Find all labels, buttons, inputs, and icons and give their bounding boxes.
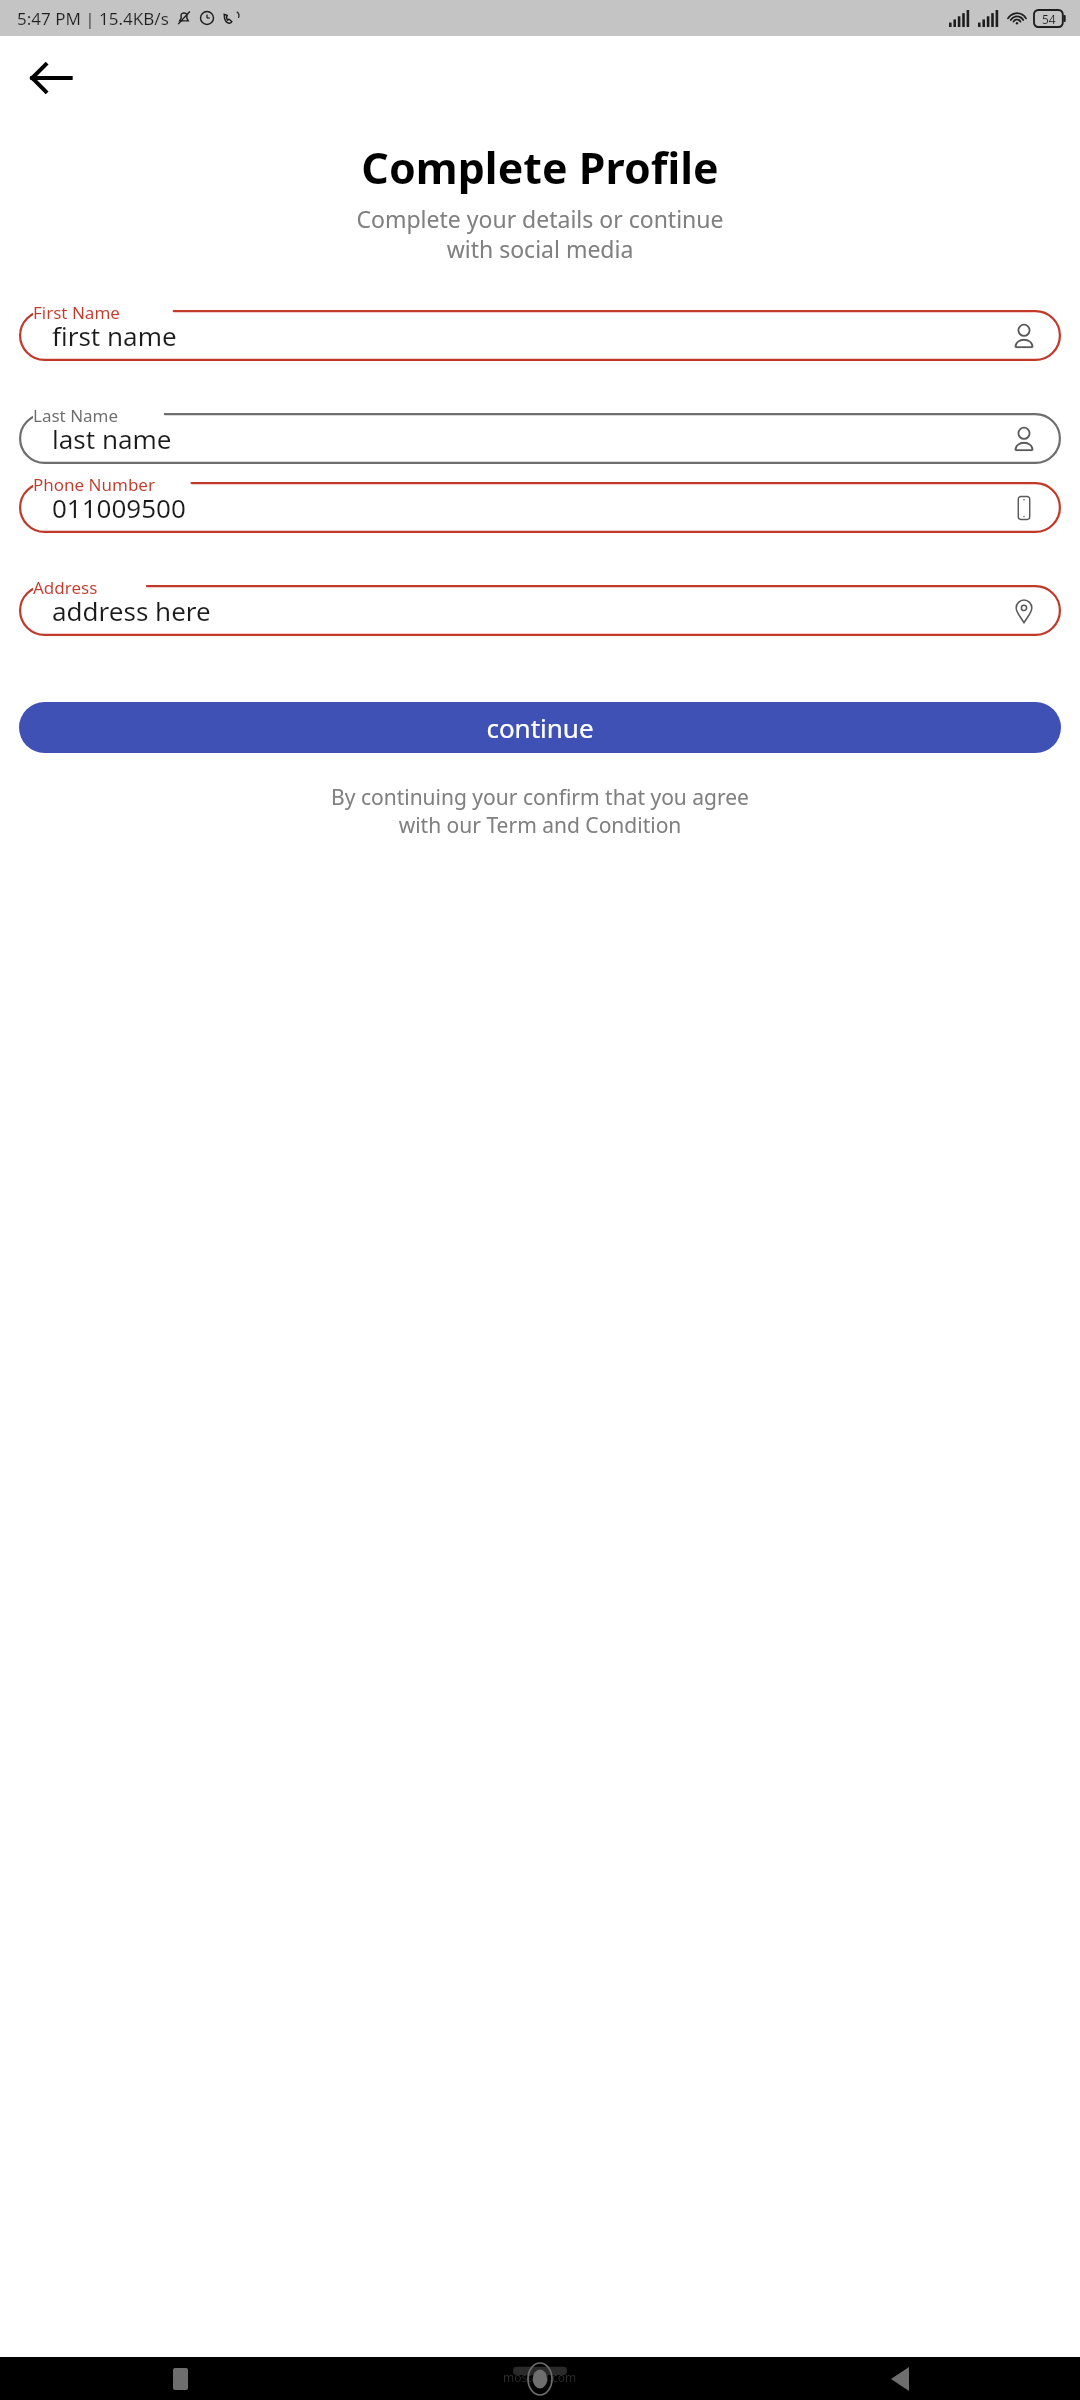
button[interactable]: Phone Number <box>19 482 1061 533</box>
button[interactable]: Home <box>360 2357 720 2400</box>
staticText: First Name <box>33 301 120 324</box>
button[interactable]: Address <box>19 585 1061 636</box>
button[interactable]: Back <box>720 2357 1080 2400</box>
staticText: Complete your details or continue with s… <box>40 203 1040 264</box>
staticText: first name <box>52 318 177 353</box>
staticText: Phone Number <box>33 473 155 496</box>
button[interactable]: continue <box>19 702 1061 753</box>
button[interactable]: Last Name <box>19 413 1061 464</box>
staticText: mostaql.com <box>503 2369 577 2385</box>
button[interactable]: First Name <box>19 310 1061 361</box>
staticText: address here <box>52 593 211 628</box>
staticText: Complete Profile <box>0 138 1080 197</box>
staticText: continue <box>486 710 594 745</box>
staticText: 54 <box>1042 11 1056 27</box>
button[interactable]: Back <box>26 52 78 104</box>
staticText: Last Name <box>33 404 119 427</box>
button[interactable]: Recent apps <box>0 2357 360 2400</box>
staticText: By continuing your confirm that you agre… <box>30 783 1050 839</box>
staticText: 011009500 <box>52 490 186 525</box>
staticText: 5:47 PM | 15.4KB/s <box>17 7 169 30</box>
staticText: Address <box>33 576 98 599</box>
staticText: last name <box>52 421 172 456</box>
